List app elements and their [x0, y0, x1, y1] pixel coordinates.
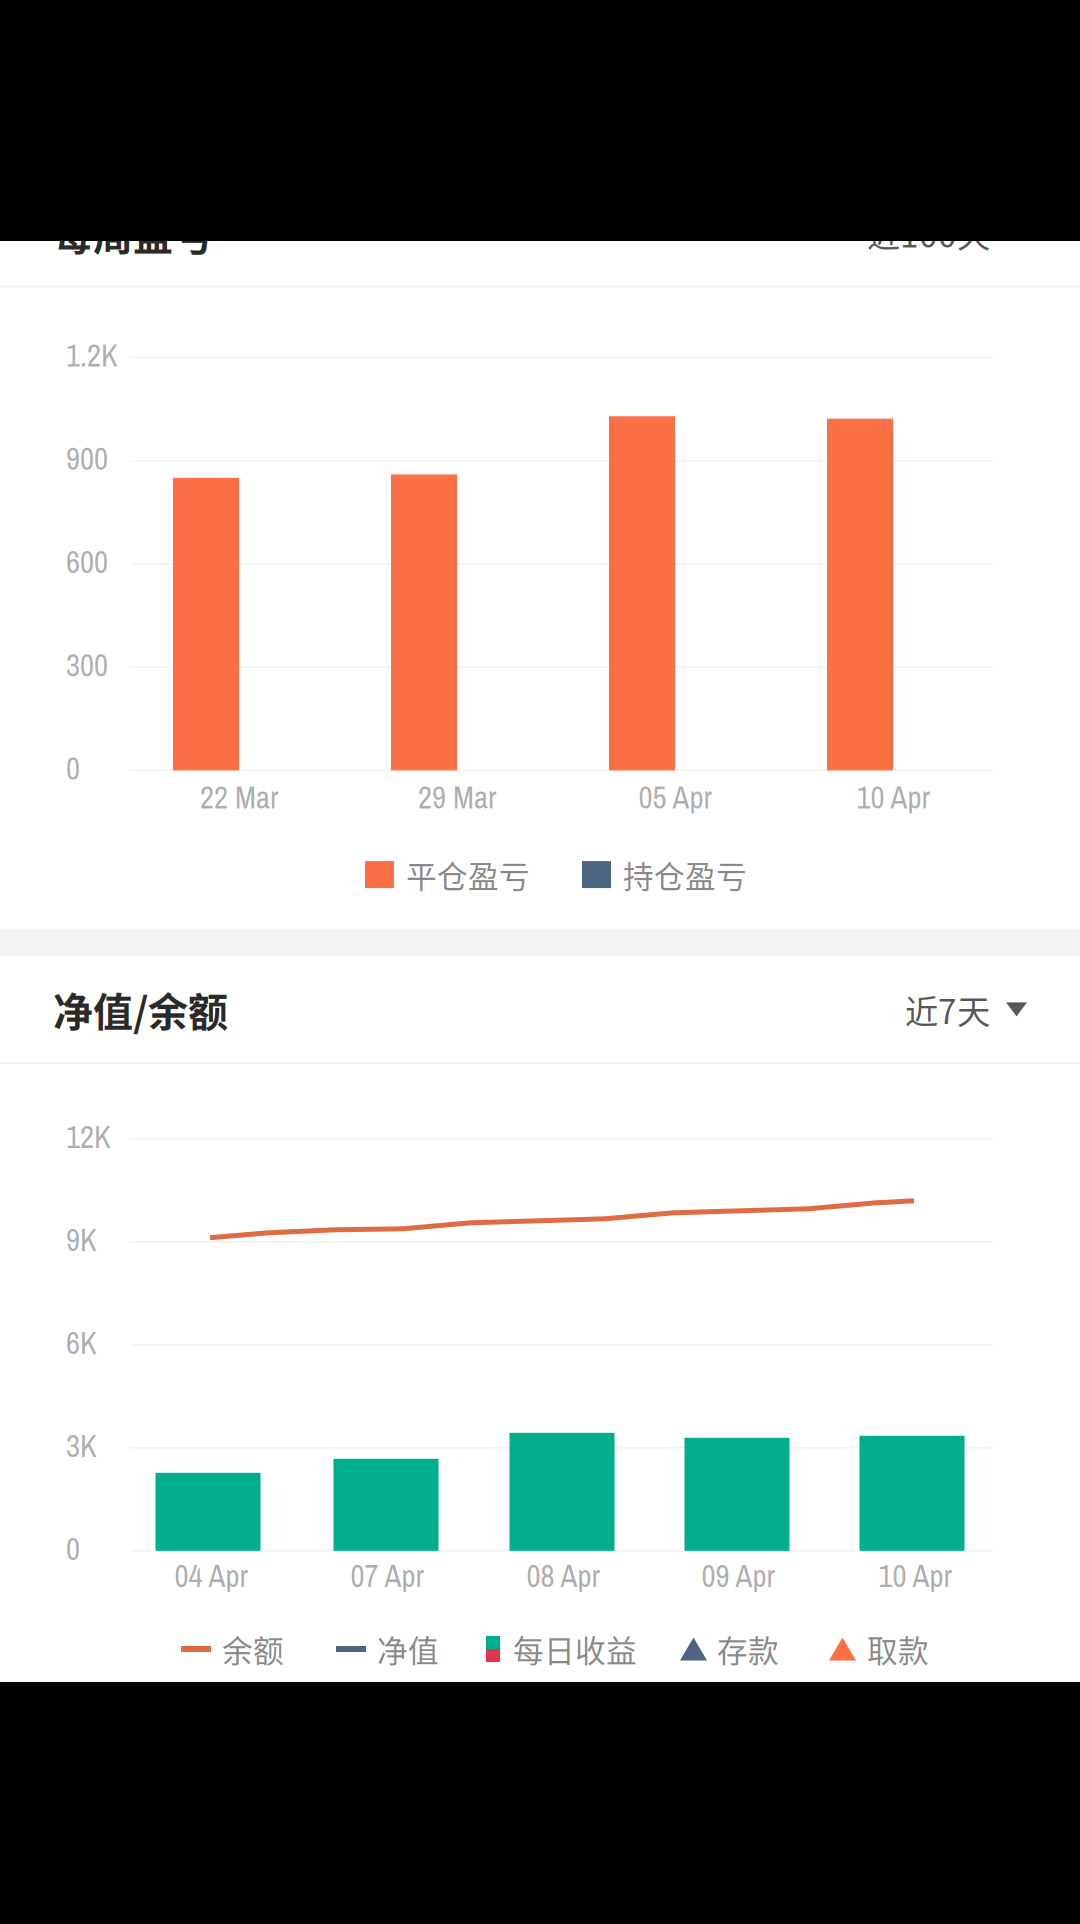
staticText: 平仓盈亏: [406, 852, 530, 897]
button[interactable]: 平仓盈亏: [365, 852, 530, 897]
button[interactable]: 近100天: [867, 209, 1027, 257]
staticText: 10 Apr: [856, 777, 929, 818]
staticText: 近100天: [867, 209, 990, 257]
staticText: 持仓盈亏: [623, 852, 747, 897]
staticText: 每日收益: [513, 1627, 637, 1671]
staticText: 900: [66, 438, 108, 479]
button[interactable]: 每日收益: [486, 1627, 637, 1671]
staticText: 取款: [867, 1627, 929, 1671]
staticText: 600: [66, 541, 108, 582]
staticText: 1.2K: [66, 335, 118, 376]
staticText: 10 Apr: [878, 1555, 951, 1596]
staticText: 净值/余额: [53, 980, 228, 1038]
staticText: 9K: [66, 1219, 97, 1260]
staticText: 0: [66, 1528, 80, 1569]
staticText: 04 Apr: [174, 1555, 247, 1596]
staticText: 净值: [377, 1627, 439, 1671]
staticText: 08 Apr: [526, 1555, 599, 1596]
button[interactable]: 余额: [181, 1627, 284, 1671]
staticText: 近7天: [905, 985, 990, 1034]
button[interactable]: 取款: [829, 1627, 929, 1671]
staticText: 07 Apr: [350, 1555, 423, 1596]
button[interactable]: 持仓盈亏: [582, 852, 747, 897]
staticText: 22 Mar: [200, 777, 278, 818]
button[interactable]: 净值: [336, 1627, 439, 1671]
staticText: 3K: [66, 1425, 97, 1466]
staticText: 29 Mar: [418, 777, 496, 818]
staticText: 每周盈亏: [53, 204, 213, 262]
staticText: 0: [66, 748, 80, 789]
staticText: 09 Apr: [701, 1555, 774, 1596]
staticText: 12K: [66, 1116, 111, 1157]
staticText: 05 Apr: [638, 777, 711, 818]
button[interactable]: 存款: [680, 1627, 779, 1671]
staticText: 存款: [717, 1627, 779, 1671]
staticText: 余额: [222, 1627, 284, 1671]
staticText: 300: [66, 644, 108, 686]
button[interactable]: 近7天: [905, 985, 1027, 1034]
staticText: 6K: [66, 1322, 97, 1363]
